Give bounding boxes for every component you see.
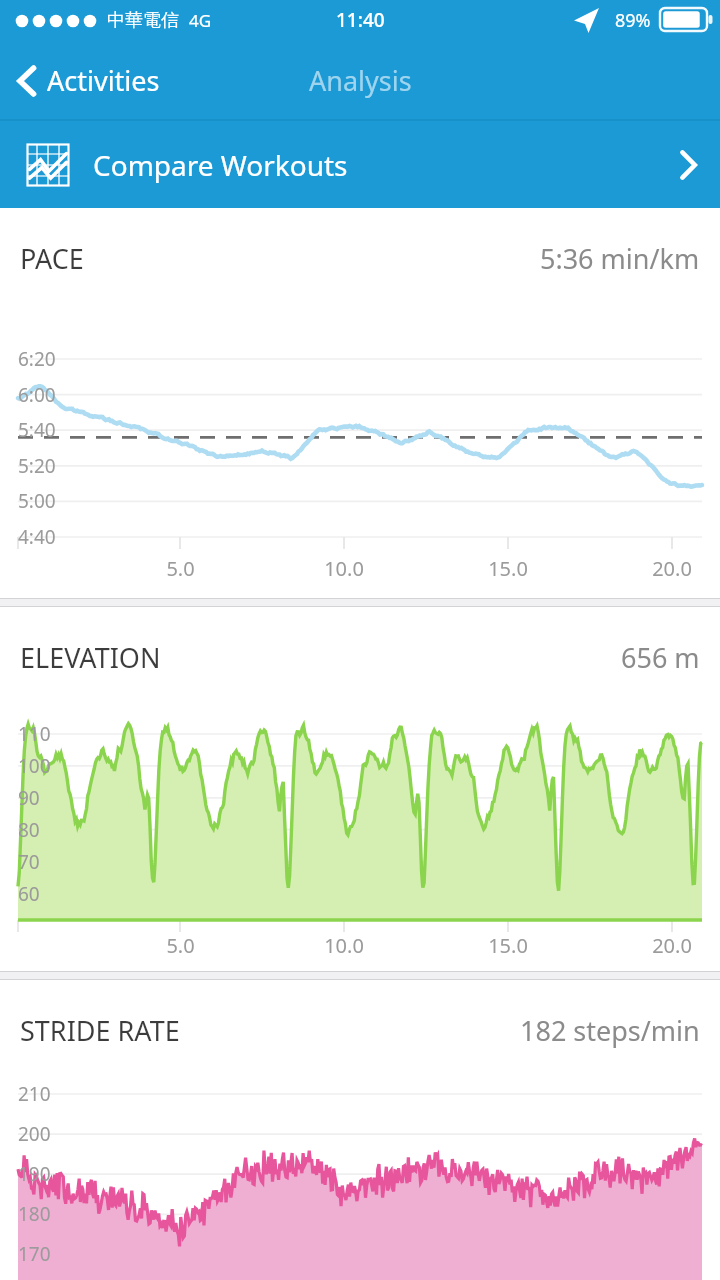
staticText: 5.0 xyxy=(166,555,195,582)
staticText: 11:40 xyxy=(336,7,385,33)
staticText: 20.0 xyxy=(652,555,692,582)
staticText: 15.0 xyxy=(488,555,528,582)
staticText: Analysis xyxy=(309,62,412,99)
staticText: 200 xyxy=(18,1121,51,1147)
staticText: 10.0 xyxy=(324,555,364,582)
staticText: 90 xyxy=(18,785,40,811)
staticText: 20.0 xyxy=(652,932,692,959)
staticText: 5.0 xyxy=(166,932,195,959)
staticText: 6:00 xyxy=(18,382,56,408)
staticText: 110 xyxy=(18,721,51,747)
staticText: 89% xyxy=(615,8,651,33)
staticText: 6:20 xyxy=(18,346,56,372)
staticText: STRIDE RATE xyxy=(20,1012,180,1049)
staticText: ELEVATION xyxy=(20,639,161,676)
staticText: 中華電信 xyxy=(107,9,179,32)
staticText: 182 steps/min xyxy=(520,1012,700,1049)
staticText: 15.0 xyxy=(488,932,528,959)
staticText: 70 xyxy=(18,849,40,875)
staticText: 210 xyxy=(18,1081,51,1107)
staticText: 80 xyxy=(18,817,40,843)
staticText: 170 xyxy=(18,1241,51,1267)
staticText: 4:40 xyxy=(18,524,56,550)
staticText: 656 m xyxy=(621,639,700,676)
staticText: 10.0 xyxy=(324,932,364,959)
staticText: Compare Workouts xyxy=(93,146,348,184)
staticText: 5:00 xyxy=(18,488,56,514)
other: Open compare workouts xyxy=(678,148,698,182)
button[interactable]: Activities xyxy=(8,54,170,107)
staticText: 100 xyxy=(18,753,51,779)
staticText: 5:36 min/km xyxy=(540,240,700,277)
button[interactable]: Compare Workouts xyxy=(0,121,720,208)
staticText: 60 xyxy=(18,881,40,907)
staticText: 180 xyxy=(18,1201,51,1227)
staticText: 5:40 xyxy=(18,417,56,443)
staticText: PACE xyxy=(20,240,84,277)
staticText: 4G xyxy=(189,9,212,32)
staticText: 5:20 xyxy=(18,453,56,479)
staticText: 190 xyxy=(18,1161,51,1187)
staticText: Activities xyxy=(47,62,160,99)
